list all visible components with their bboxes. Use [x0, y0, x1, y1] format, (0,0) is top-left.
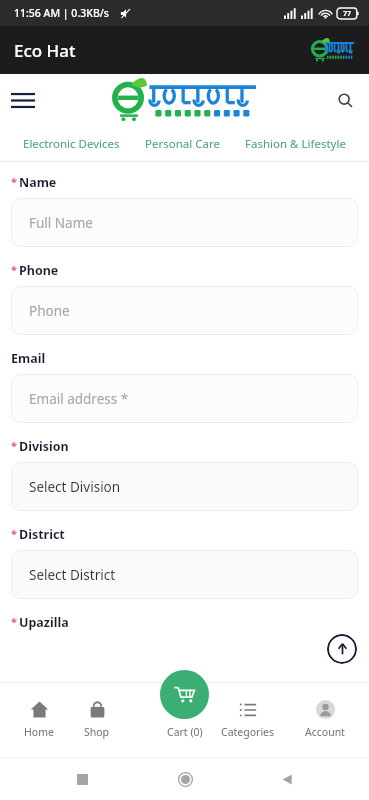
button[interactable]: Home	[165, 759, 205, 799]
button[interactable]: Select District	[11, 550, 358, 599]
button[interactable]: Scroll to top	[327, 634, 357, 664]
staticText: Email address *	[29, 390, 129, 408]
staticText: Phone	[29, 302, 70, 320]
button[interactable]: Email address *	[11, 374, 358, 423]
button[interactable]: Recents	[62, 759, 102, 799]
button[interactable]: Phone	[11, 286, 358, 335]
staticText: *	[11, 174, 17, 189]
button[interactable]: Full Name	[11, 198, 358, 247]
staticText: Select District	[29, 566, 116, 584]
staticText: Phone	[19, 262, 59, 279]
staticText: Shop	[84, 725, 110, 739]
staticText: Electronic Devices	[23, 136, 120, 152]
button[interactable]: Account	[299, 695, 351, 744]
button[interactable]: Back	[267, 759, 307, 799]
staticText: Select Division	[29, 478, 121, 496]
staticText: *	[11, 262, 17, 277]
button[interactable]: Categories	[215, 696, 281, 744]
staticText: Full Name	[29, 214, 93, 232]
button[interactable]: Cart	[160, 670, 209, 719]
staticText: Account	[305, 725, 345, 739]
staticText: 77	[343, 9, 352, 19]
button[interactable]: Menu	[6, 83, 40, 117]
button[interactable]: Fashion & Lifestyle	[243, 132, 348, 156]
staticText: Upazilla	[19, 614, 69, 631]
staticText: District	[19, 526, 65, 543]
staticText: *	[11, 526, 17, 541]
staticText: Fashion & Lifestyle	[245, 136, 346, 152]
staticText: Name	[19, 174, 57, 191]
staticText: Categories	[221, 725, 275, 739]
staticText: Division	[19, 438, 69, 455]
staticText: Home	[24, 725, 54, 739]
button[interactable]: Shop	[78, 695, 116, 744]
staticText: *	[11, 614, 17, 629]
staticText: 11:56 AM | 0.3KB/s	[14, 6, 109, 20]
button[interactable]: Personal Care	[143, 132, 222, 156]
staticText: Cart (0)	[167, 725, 203, 739]
staticText: Personal Care	[145, 136, 220, 152]
staticText: *	[11, 438, 17, 453]
staticText: Eco Hat	[14, 39, 76, 62]
button[interactable]: Search	[329, 84, 361, 116]
staticText: Email	[11, 350, 46, 367]
button[interactable]: Electronic Devices	[21, 132, 122, 156]
button[interactable]: Ecohat logo	[315, 35, 355, 65]
button[interactable]: Select Division	[11, 462, 358, 511]
button[interactable]: Home	[18, 695, 60, 744]
